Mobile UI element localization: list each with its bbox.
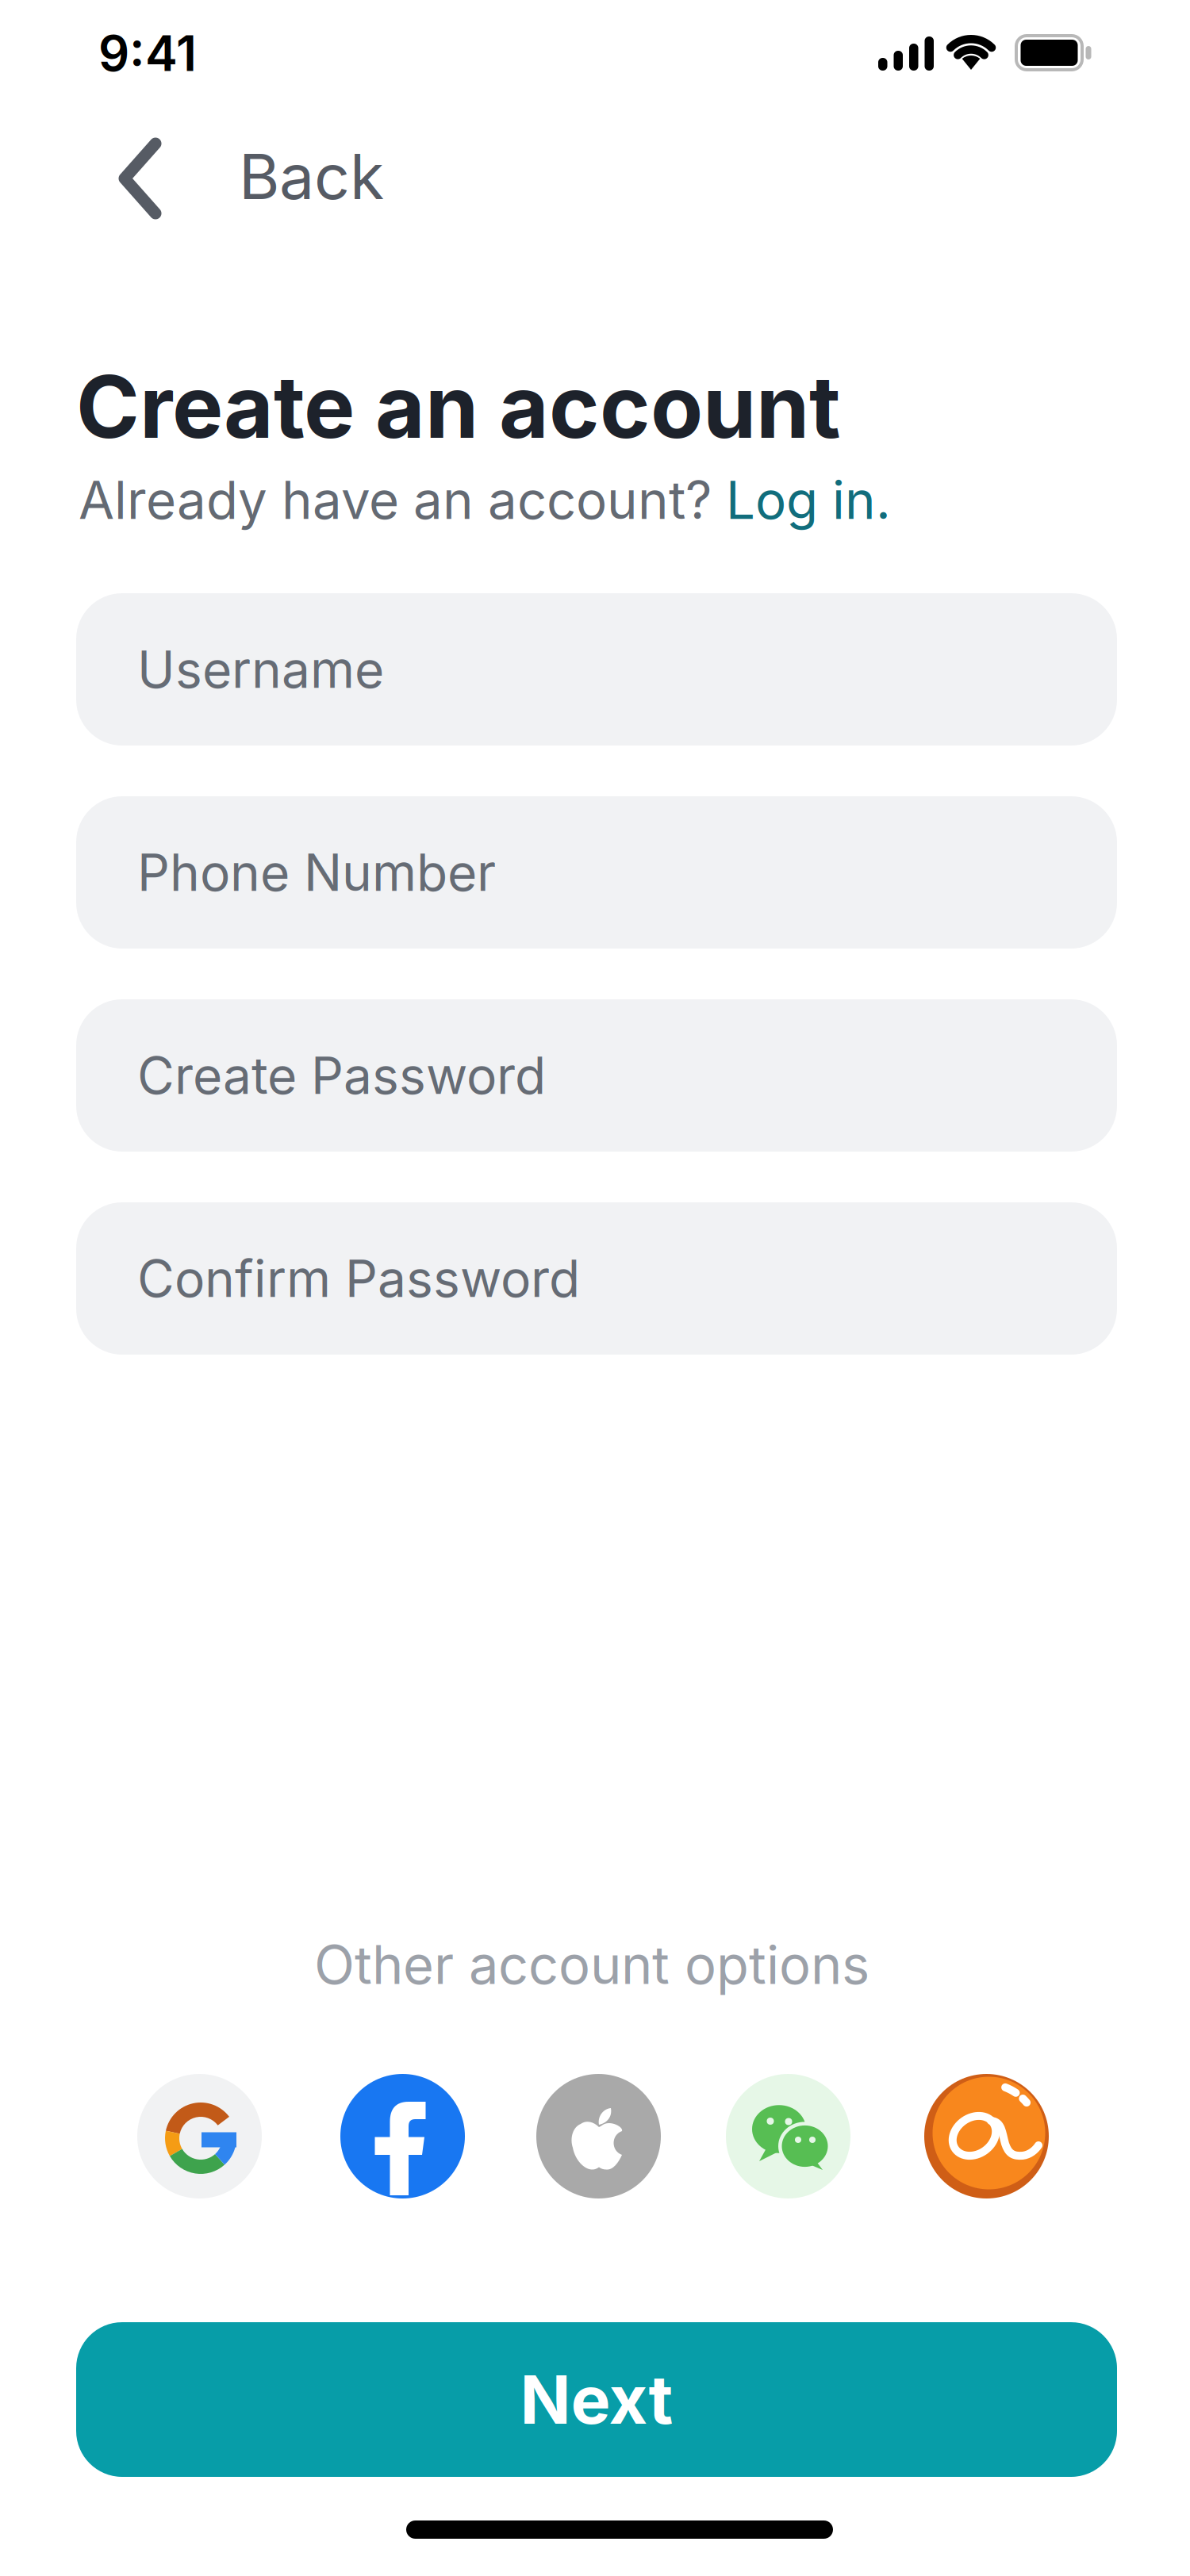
button[interactable]: Next [76, 2322, 1117, 2477]
staticText: Confirm Password [137, 1249, 580, 1308]
button[interactable]: Back [116, 130, 401, 227]
button[interactable]: Continue with Facebook [340, 2074, 465, 2198]
button[interactable]: Continue with Google [137, 2074, 262, 2198]
staticText: Back [239, 140, 384, 213]
button[interactable]: Continue with Alibaba [924, 2074, 1049, 2198]
staticText: Username [137, 639, 384, 699]
staticText: Create an account [76, 356, 841, 457]
staticText: Next [520, 2360, 673, 2439]
staticText: Log in. [726, 470, 891, 531]
staticText: Already have an account? [79, 470, 726, 531]
button[interactable]: Log in. [726, 470, 891, 531]
staticText: Phone Number [137, 842, 496, 902]
textField[interactable]: Confirm Password [76, 1202, 1117, 1355]
textField[interactable]: Create Password [76, 999, 1117, 1152]
textField[interactable]: Phone Number [76, 796, 1117, 949]
staticText: Create Password [137, 1045, 546, 1105]
button[interactable]: Continue with WeChat [726, 2074, 850, 2198]
textField[interactable]: Username [76, 593, 1117, 746]
button[interactable]: Continue with Apple [536, 2074, 661, 2198]
staticText: Other account options [314, 1934, 869, 1996]
staticText: 9:41 [98, 25, 197, 82]
